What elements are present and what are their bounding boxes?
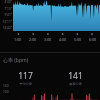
button[interactable]: 117 <box>0 70 50 86</box>
staticText: 7'10" <box>4 7 12 11</box>
button[interactable]: 141 <box>50 70 100 86</box>
staticText: 5:00 <box>74 37 82 42</box>
staticText: 9'41" <box>4 13 12 17</box>
staticText: 平均心率 <box>19 82 32 86</box>
staticText: 4'40" <box>4 0 12 4</box>
staticText: 14'42" <box>2 26 12 30</box>
staticText: 117 <box>18 70 33 82</box>
staticText: 12'11" <box>2 20 12 24</box>
staticText: 2:00 <box>29 37 37 42</box>
staticText: 100 <box>3 90 9 94</box>
staticText: 心率 (bpm) <box>3 57 29 64</box>
staticText: 最高心率 <box>69 82 82 86</box>
staticText: 6:00 <box>89 37 97 42</box>
staticText: 1:00 <box>14 37 22 42</box>
staticText: 141 <box>68 70 83 82</box>
staticText: 3:00 <box>44 37 52 42</box>
staticText: 4:00 <box>59 37 67 42</box>
staticText: 140 <box>3 84 9 88</box>
